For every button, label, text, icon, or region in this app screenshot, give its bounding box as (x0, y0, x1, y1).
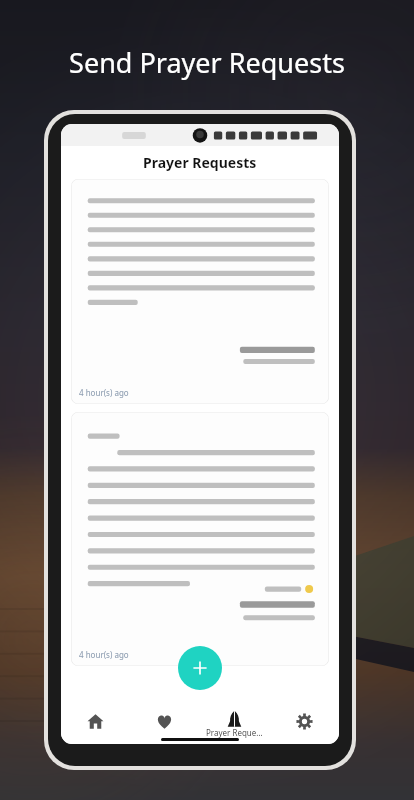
staticText: 4 hour(s) ago (79, 387, 129, 398)
staticText: 4 hour(s) ago (79, 649, 129, 660)
button[interactable]: Add prayer request (178, 646, 222, 690)
button[interactable]: Home (61, 704, 130, 744)
staticText: Send Prayer Requests (69, 44, 345, 81)
button[interactable]: Settings (269, 704, 339, 744)
button[interactable]: Favorites (130, 704, 199, 744)
button[interactable]: 4 hour(s) ago (71, 179, 329, 404)
staticText: Prayer Requests (143, 153, 257, 172)
staticText: Prayer Reque… (206, 727, 263, 738)
button[interactable]: Prayer Reque… (199, 704, 269, 744)
button[interactable]: 4 hour(s) ago (71, 412, 329, 666)
